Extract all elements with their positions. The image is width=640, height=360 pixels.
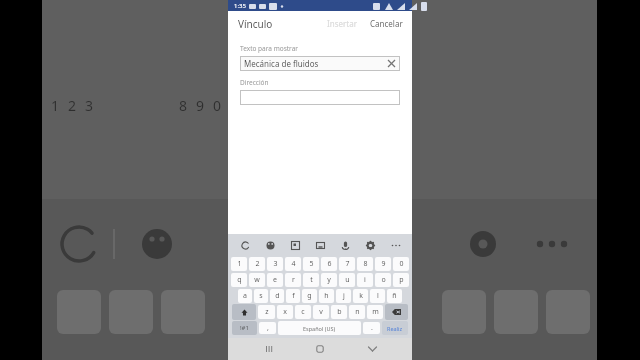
staticText: 3 [273,259,278,269]
staticText: z [265,307,269,317]
button[interactable]: Cancelar [367,15,406,32]
button[interactable]: Ajustes [361,236,379,254]
staticText: j [343,291,345,301]
button[interactable]: x [277,305,293,319]
button[interactable]: w [249,273,265,287]
button[interactable] [240,90,400,105]
button[interactable]: 8 [357,257,373,271]
button[interactable]: Español (US) [278,321,361,335]
staticText: 1 [237,259,242,269]
button[interactable]: Stickers [286,236,304,254]
button[interactable]: Emoji [261,236,279,254]
button[interactable]: y [321,273,337,287]
button[interactable]: Texto [236,236,254,254]
staticText: e [273,275,277,285]
staticText: 5 [309,259,314,269]
button[interactable]: b [331,305,347,319]
button[interactable]: 5 [303,257,319,271]
staticText: h [324,291,329,301]
staticText: a [243,291,247,301]
button[interactable]: t [303,273,319,287]
staticText: 0 [213,96,222,111]
staticText: 9 [196,96,205,111]
button[interactable]: 4 [285,257,301,271]
button[interactable]: ñ [387,289,402,303]
staticText: y [327,275,331,285]
button[interactable]: , [259,322,276,334]
button[interactable]: z [258,305,275,319]
button[interactable]: 3 [267,257,283,271]
button[interactable]: g [302,289,317,303]
staticText: v [319,307,323,317]
staticText: b [337,307,342,317]
button[interactable]: k [353,289,368,303]
button[interactable]: Portapapeles [311,236,329,254]
button[interactable]: h [319,289,334,303]
button[interactable]: v [313,305,329,319]
button[interactable]: c [295,305,311,319]
staticText: c [301,307,305,317]
staticText: 8 [179,96,188,111]
button[interactable]: Insertar [323,15,361,32]
button[interactable]: m [367,305,383,319]
button[interactable]: u [339,273,355,287]
staticText: d [275,291,280,301]
button[interactable]: r [285,273,301,287]
staticText: t [310,275,313,285]
staticText: !#1 [240,324,249,332]
staticText: 7 [345,259,350,269]
staticText: Insertar [327,18,357,29]
button[interactable]: s [254,289,268,303]
button[interactable]: a [238,289,252,303]
staticText: Vínculo [238,17,273,31]
other: Borrar texto [388,60,395,67]
button[interactable]: e [267,273,283,287]
button[interactable]: Recientes [258,338,280,360]
staticText: 0 [399,259,404,269]
button[interactable]: q [231,273,247,287]
button[interactable]: 7 [339,257,355,271]
button[interactable]: Mecánica de fluidos [240,56,400,71]
staticText: 1 [51,96,60,111]
staticText: x [283,307,287,317]
staticText: w [254,275,260,285]
button[interactable]: 1 [231,257,247,271]
button[interactable]: Realiz [382,321,408,335]
button[interactable]: l [370,289,385,303]
staticText: r [292,275,295,285]
staticText: s [259,291,263,301]
button[interactable]: o [375,273,391,287]
button[interactable]: 6 [321,257,337,271]
button[interactable]: d [270,289,284,303]
button[interactable]: 9 [375,257,391,271]
button[interactable]: n [349,305,365,319]
button[interactable]: p [393,273,409,287]
button[interactable]: Mayúsculas [232,304,256,320]
button[interactable]: 2 [249,257,265,271]
staticText: l [377,291,379,301]
staticText: k [359,291,363,301]
button[interactable]: Inicio [309,338,331,360]
staticText: n [355,307,360,317]
staticText: i [364,275,366,285]
staticText: Español (US) [303,325,336,332]
staticText: ñ [392,291,397,301]
button[interactable]: i [357,273,373,287]
staticText: Realiz [387,325,403,332]
button[interactable]: Retroceso [385,304,408,320]
button[interactable]: j [336,289,351,303]
staticText: Cancelar [370,18,403,29]
staticText: m [372,307,379,317]
staticText: f [292,291,295,301]
button[interactable]: . [363,322,380,334]
button[interactable]: f [286,289,300,303]
button[interactable]: !#1 [232,321,257,335]
staticText: g [307,291,312,301]
staticText: p [399,275,404,285]
staticText: Texto para mostrar [240,44,298,53]
button[interactable]: 0 [393,257,409,271]
button[interactable]: Atrás [361,338,383,360]
button[interactable]: Más opciones [386,236,404,254]
staticText: o [381,275,386,285]
button[interactable]: Micrófono [336,236,354,254]
